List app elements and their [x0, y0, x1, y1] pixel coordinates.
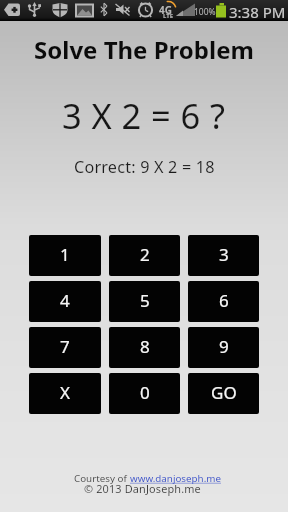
staticText: 4	[60, 289, 70, 312]
staticText: 9	[219, 335, 229, 358]
staticText: Correct: 9 X 2 = 18	[74, 156, 215, 178]
staticText: X	[60, 381, 70, 404]
staticText: 5	[140, 289, 150, 312]
staticText: GO	[211, 381, 237, 404]
staticText: 3	[219, 243, 229, 266]
staticText: 4G	[159, 3, 172, 17]
staticText: 8	[140, 335, 150, 358]
staticText: 100%	[194, 6, 216, 18]
button[interactable]: www.danjoseph.me	[130, 472, 221, 485]
button[interactable]: 9	[188, 327, 259, 368]
staticText: 2	[140, 243, 150, 266]
staticText: LTE	[163, 12, 174, 20]
button[interactable]: 3	[188, 235, 259, 276]
staticText: 1	[60, 243, 70, 266]
staticText: Courtesy of	[74, 472, 130, 485]
button[interactable]: 2	[109, 235, 180, 276]
button[interactable]: 6	[188, 281, 259, 322]
button[interactable]: 4	[29, 281, 101, 322]
button[interactable]: 1	[29, 235, 101, 276]
staticText: 3:38 PM	[229, 2, 286, 22]
button[interactable]: 5	[109, 281, 180, 322]
staticText: 3 X 2 = 6 ?	[62, 92, 226, 138]
button[interactable]: 7	[29, 327, 101, 368]
button[interactable]: X	[29, 373, 101, 414]
staticText: 6	[219, 289, 229, 312]
button[interactable]: 8	[109, 327, 180, 368]
staticText: 7	[60, 335, 70, 358]
staticText: 0	[140, 381, 150, 404]
staticText: © 2013 DanJoseph.me	[84, 481, 201, 496]
button[interactable]: GO	[188, 373, 259, 414]
staticText: Solve The Problem	[34, 33, 254, 66]
button[interactable]: 0	[109, 373, 180, 414]
